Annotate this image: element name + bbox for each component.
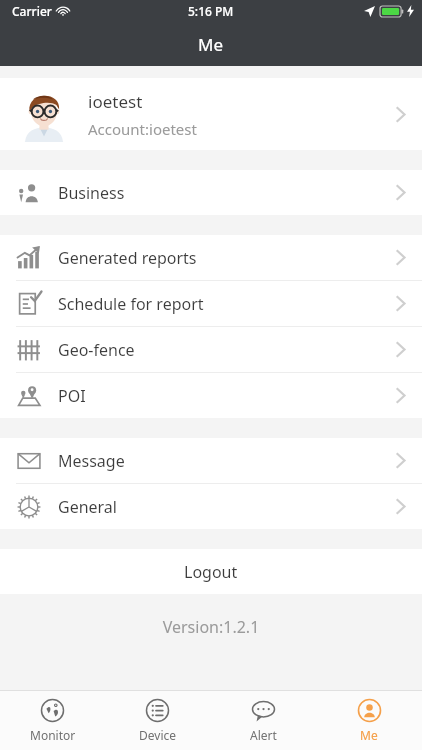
staticText: POI [58,385,86,407]
staticText: Account:ioetest [88,119,197,139]
button[interactable]: Schedule for report [0,281,422,326]
staticText: Schedule for report [58,293,204,315]
button[interactable]: Geo-fence [0,327,422,372]
button[interactable]: Generated reports [0,235,422,280]
button[interactable]: General [0,484,422,529]
staticText: Geo-fence [58,339,135,361]
staticText: Me [360,727,378,743]
button[interactable]: POI [0,373,422,418]
staticText: Alert [250,727,277,743]
button[interactable]: Business [0,170,422,215]
staticText: Business [58,182,125,204]
staticText: General [58,496,117,518]
button[interactable]: Message [0,438,422,483]
staticText: Generated reports [58,247,197,269]
staticText: Carrier [12,3,52,19]
staticText: Device [139,727,177,743]
staticText: ioetest [88,90,143,113]
staticText: Monitor [30,727,76,743]
button[interactable]: Me [316,691,422,750]
staticText: Version:1.2.1 [0,616,422,638]
staticText: Me [198,33,224,56]
staticText: 5:16 PM [188,3,234,19]
button[interactable]: Monitor [0,691,105,750]
staticText: Logout [184,561,238,583]
button[interactable]: ioetest [0,78,422,150]
staticText: Message [58,450,125,472]
button[interactable]: Alert [210,691,316,750]
button[interactable]: Device [105,691,210,750]
button[interactable]: Logout [0,549,422,594]
